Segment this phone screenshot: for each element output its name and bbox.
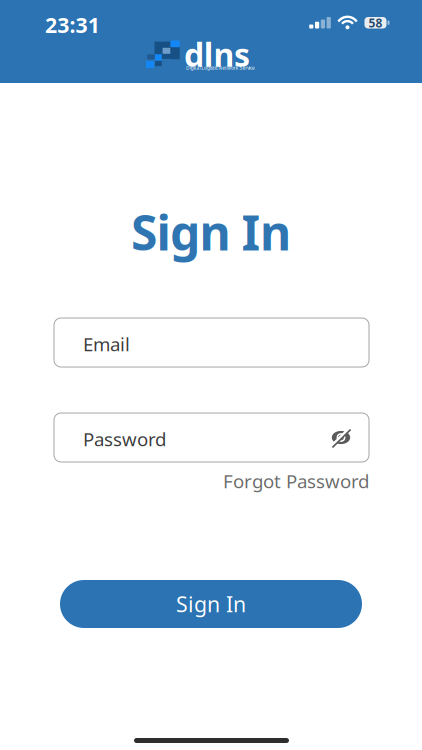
button[interactable]: Sign In [60, 580, 362, 628]
staticText: Sign In [131, 200, 291, 264]
button[interactable]: Forgot Password [223, 468, 369, 493]
staticText: Email [83, 332, 130, 356]
staticText: 58 [368, 15, 382, 31]
button[interactable]: Email [54, 318, 369, 367]
staticText: Digital Logistic Network Service [186, 64, 255, 71]
staticText: dlns [184, 33, 250, 75]
staticText: 23:31 [45, 10, 100, 39]
button[interactable]: Show password [330, 426, 352, 448]
staticText: Forgot Password [223, 468, 369, 493]
staticText: Password [83, 427, 166, 451]
button[interactable]: Password [54, 413, 369, 462]
staticText: Sign In [176, 590, 246, 618]
